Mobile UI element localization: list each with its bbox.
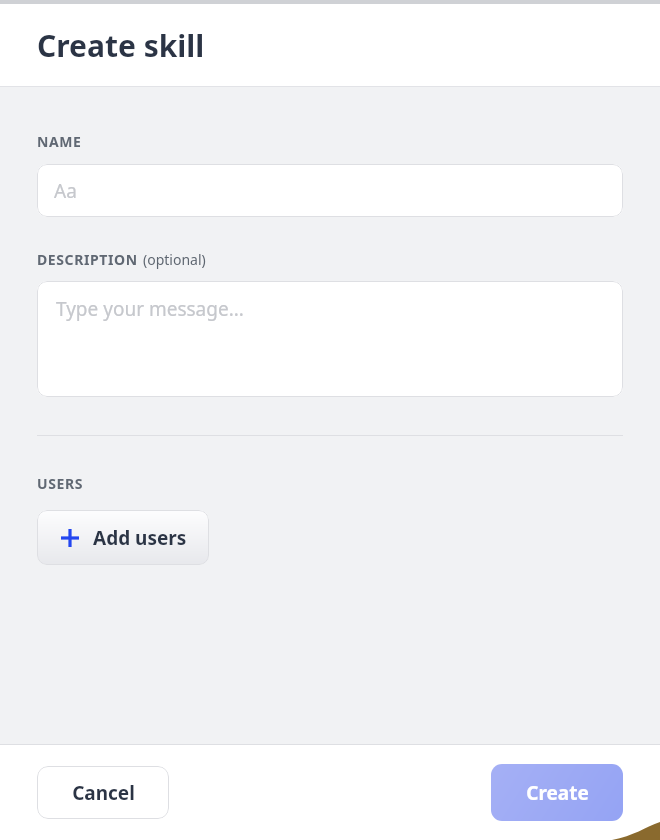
staticText: Add users [93,525,187,551]
staticText: NAME [37,132,82,151]
staticText: Type your message... [56,296,244,322]
staticText: Create skill [37,25,205,66]
button[interactable]: Create [491,764,623,821]
staticText: (optional) [143,250,206,269]
staticText: Aa [54,178,77,204]
button[interactable]: Cancel [37,766,169,819]
staticText: Create [526,780,589,806]
staticText: USERS [37,474,84,493]
button[interactable]: Add users [37,510,209,565]
button[interactable]: Type your message... [37,281,623,397]
staticText: Cancel [72,780,135,806]
staticText: DESCRIPTION [37,250,138,269]
button[interactable]: Aa [37,164,623,217]
